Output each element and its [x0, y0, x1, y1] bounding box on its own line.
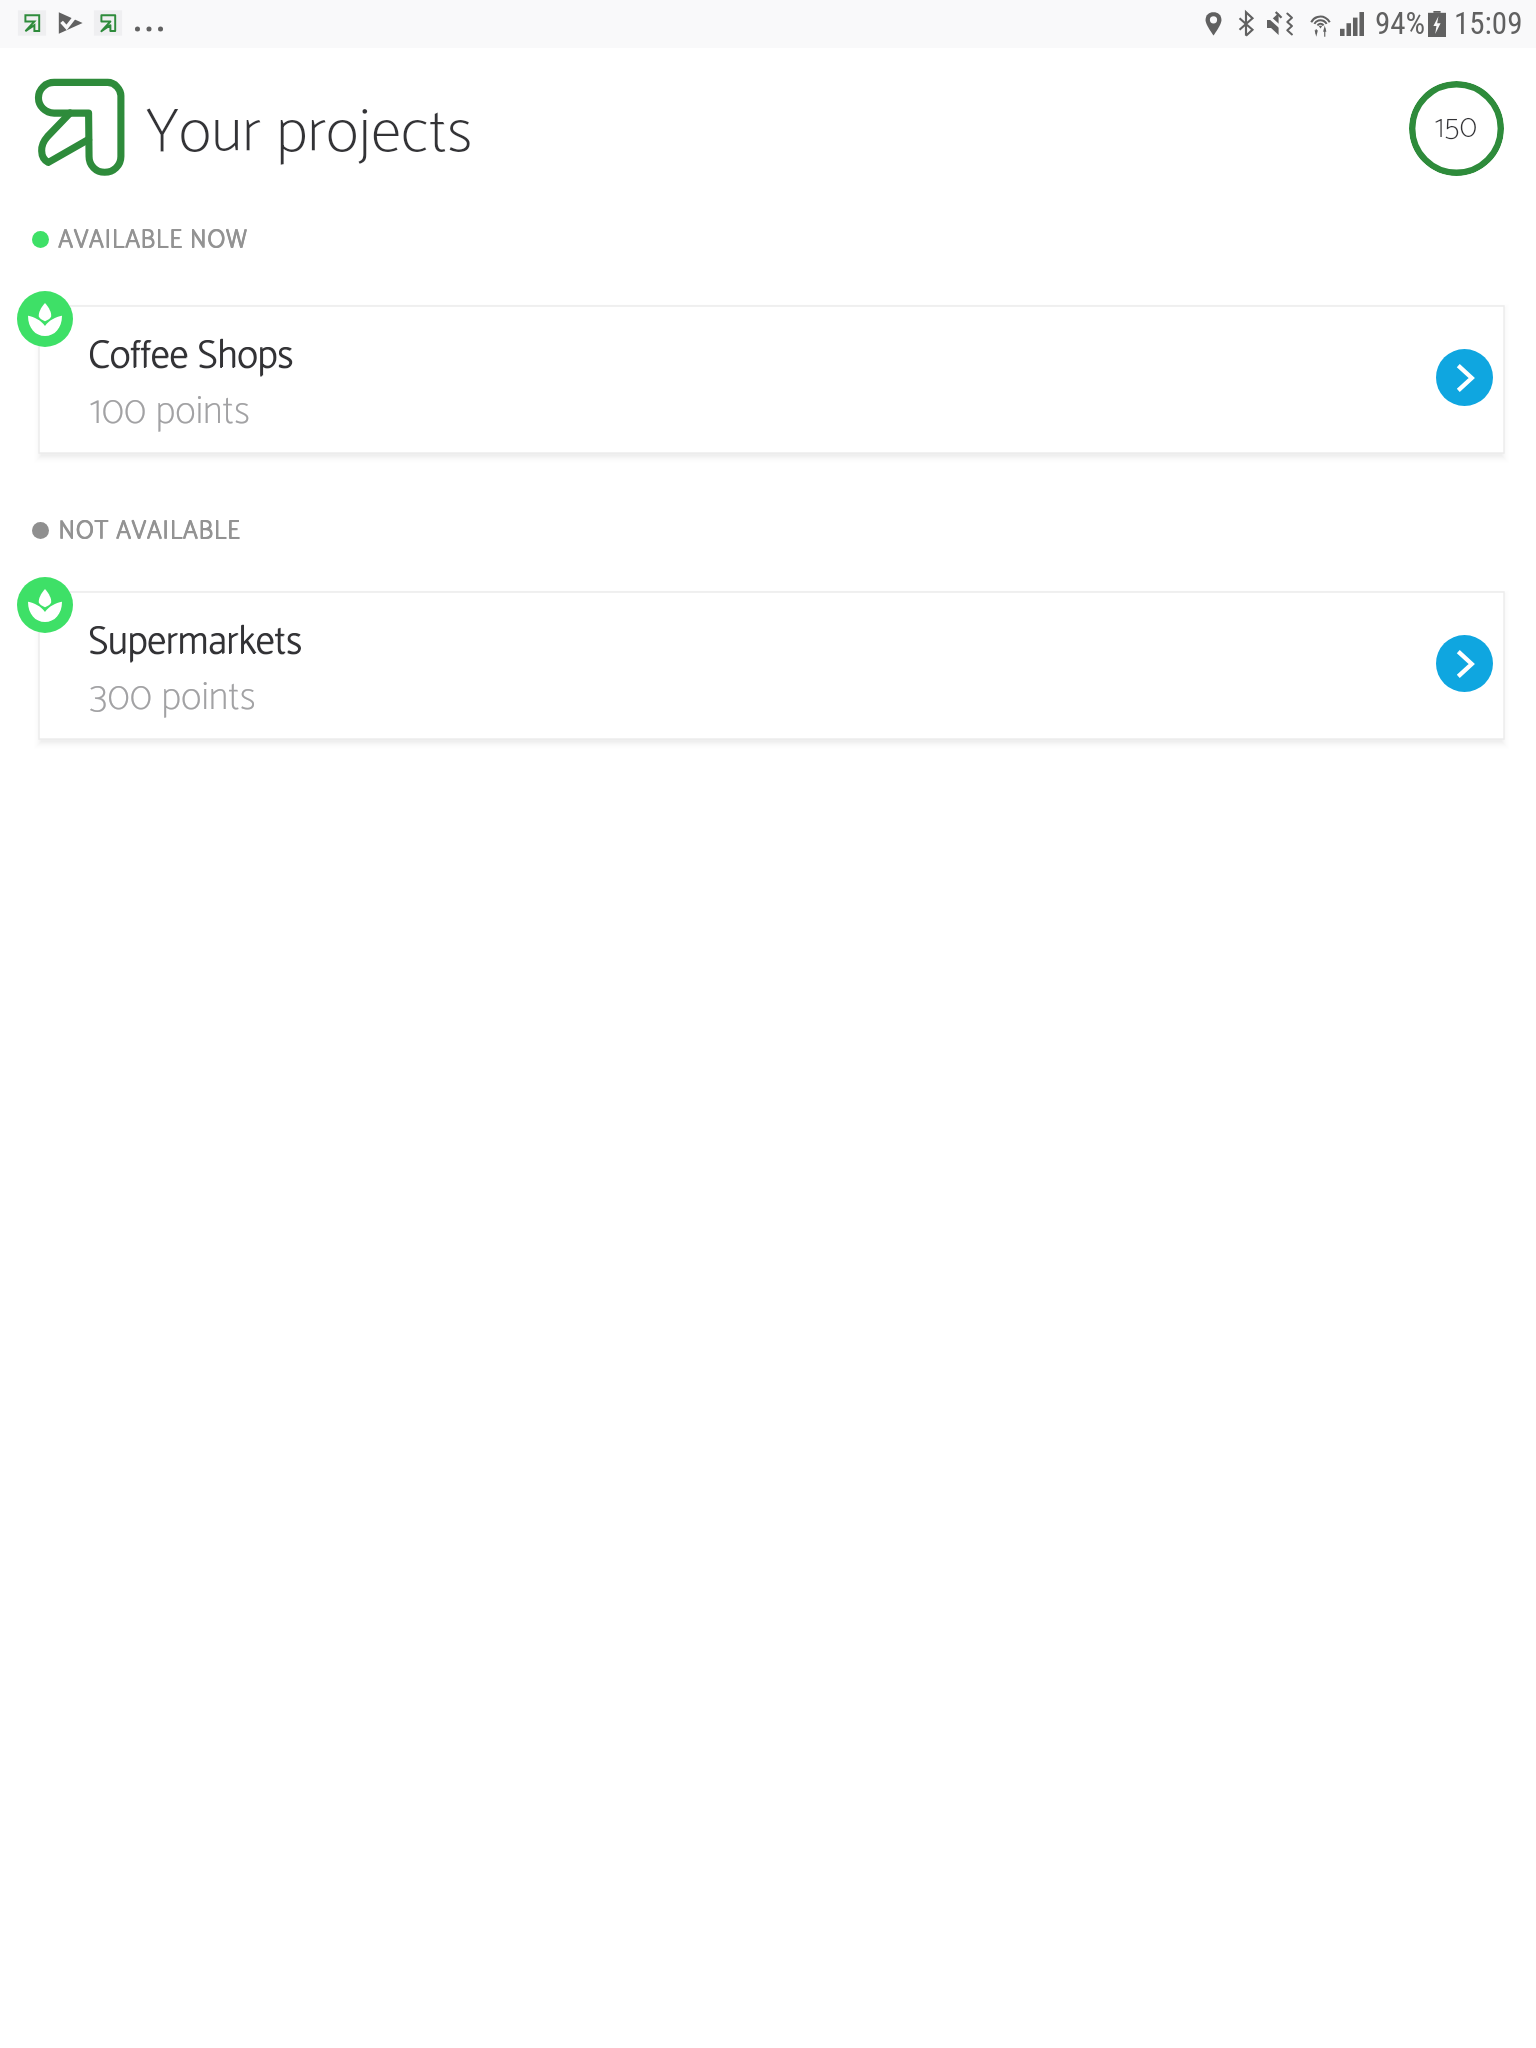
- staticText: NOT AVAILABLE: [59, 510, 242, 551]
- staticText: Your projects: [146, 83, 473, 185]
- staticText: NOT AVAILABLE: [58, 511, 241, 552]
- staticText: Supermarkets: [88, 610, 302, 674]
- button[interactable]: Open Supermarkets: [1436, 635, 1493, 692]
- staticText: 150: [1435, 103, 1478, 154]
- button[interactable]: Open Coffee Shops: [1436, 349, 1493, 406]
- staticText: NOT AVAILABLE: [59, 511, 242, 552]
- staticText: AVAILABLE NOW: [59, 220, 249, 261]
- button[interactable]: Your points: 150: [1409, 81, 1504, 176]
- staticText: 100 points: [90, 380, 250, 444]
- staticText: 300 points: [90, 666, 256, 730]
- staticText: AVAILABLE NOW: [59, 219, 249, 260]
- staticText: 15:09: [1454, 5, 1523, 41]
- staticText: Supermarkets: [88, 611, 302, 675]
- staticText: Coffee Shops: [88, 324, 293, 388]
- staticText: NOT AVAILABLE: [58, 510, 241, 551]
- other: App logo: [35, 78, 126, 176]
- button[interactable]: Supermarkets: [39, 592, 1504, 739]
- staticText: 94%: [1375, 5, 1426, 41]
- staticText: Supermarkets: [89, 610, 303, 674]
- staticText: AVAILABLE NOW: [58, 219, 248, 260]
- button[interactable]: Coffee Shops: [39, 306, 1504, 453]
- staticText: Coffee Shops: [88, 325, 293, 389]
- staticText: AVAILABLE NOW: [58, 220, 248, 261]
- staticText: Coffee Shops: [89, 324, 294, 388]
